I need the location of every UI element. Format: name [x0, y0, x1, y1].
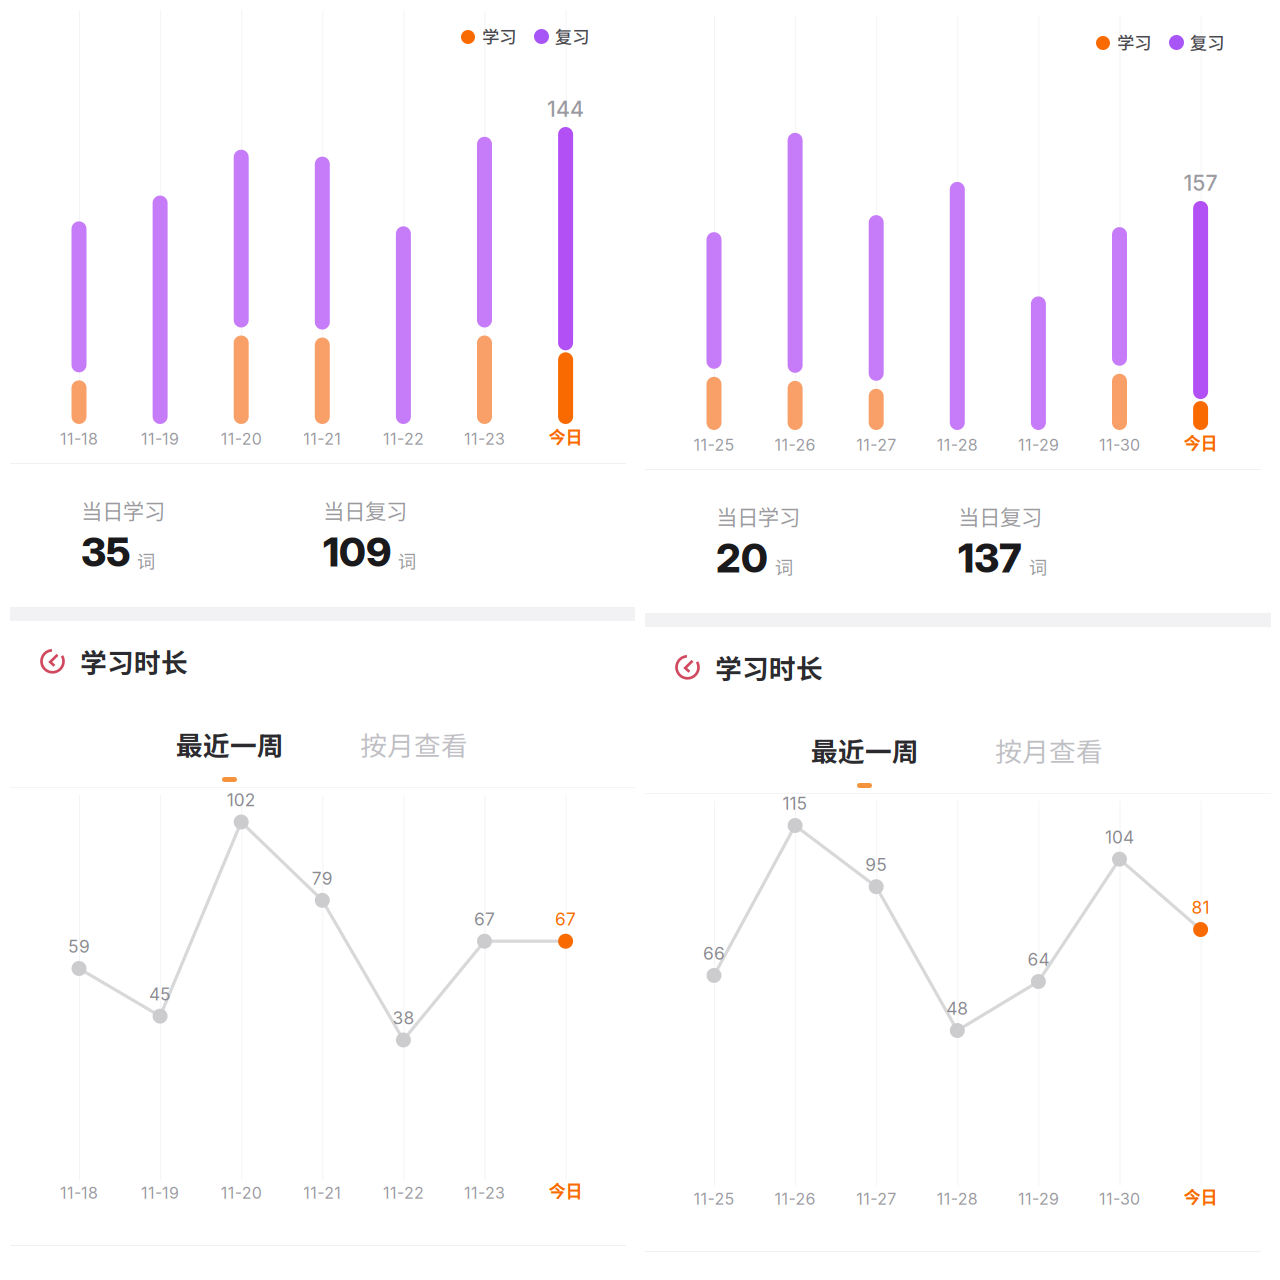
staticText: 59 — [68, 936, 90, 957]
staticText: 今日 — [1184, 1183, 1218, 1209]
staticText: 66 — [703, 943, 725, 964]
staticText: 词 — [137, 547, 156, 574]
staticText: 11-18 — [60, 429, 98, 449]
staticText: 11-29 — [1018, 1189, 1059, 1209]
staticText: 今日 — [549, 1177, 583, 1203]
button[interactable]: 按月查看 — [344, 726, 484, 762]
staticText: 学习 — [1117, 29, 1151, 55]
staticText: 11-26 — [775, 435, 816, 455]
staticText: 35 — [81, 528, 130, 576]
staticText: 11-28 — [937, 435, 978, 455]
staticText: 11-20 — [221, 429, 262, 449]
staticText: 81 — [1192, 897, 1210, 918]
staticText: 复习 — [555, 23, 589, 49]
staticText: 11-30 — [1099, 435, 1140, 455]
staticText: 11-20 — [221, 1183, 262, 1203]
staticText: 11-18 — [60, 1183, 98, 1203]
staticText: 学习 — [482, 23, 516, 49]
staticText: 45 — [149, 984, 171, 1005]
staticText: 最近一周 — [176, 725, 284, 763]
staticText: 109 — [323, 528, 391, 576]
staticText: 11-23 — [464, 429, 505, 449]
staticText: 词 — [1029, 553, 1048, 580]
staticText: 当日学习 — [716, 501, 800, 531]
staticText: 当日复习 — [323, 495, 407, 525]
staticText: 95 — [865, 854, 887, 875]
staticText: 11-25 — [693, 435, 734, 455]
staticText: 64 — [1027, 949, 1049, 970]
staticText: 115 — [783, 793, 808, 814]
staticText: 11-25 — [693, 1189, 734, 1209]
staticText: 11-21 — [303, 429, 341, 449]
staticText: 20 — [716, 534, 768, 582]
staticText: 当日复习 — [958, 501, 1042, 531]
staticText: 11-27 — [856, 435, 896, 455]
staticText: 11-27 — [856, 1189, 896, 1209]
staticText: 学习时长 — [715, 648, 823, 687]
staticText: 按月查看 — [995, 731, 1103, 769]
staticText: 137 — [958, 534, 1022, 582]
staticText: 11-30 — [1099, 1189, 1140, 1209]
staticText: 最近一周 — [811, 731, 919, 769]
staticText: 11-28 — [937, 1189, 978, 1209]
staticText: 11-23 — [464, 1183, 505, 1203]
staticText: 学习时长 — [80, 642, 188, 681]
staticText: 词 — [398, 547, 417, 574]
staticText: 按月查看 — [360, 725, 468, 763]
staticText: 今日 — [1184, 429, 1218, 455]
staticText: 11-19 — [141, 1183, 179, 1203]
staticText: 11-26 — [775, 1189, 816, 1209]
staticText: 48 — [946, 998, 968, 1019]
button[interactable]: 按月查看 — [979, 732, 1119, 768]
button[interactable]: 最近一周 — [795, 732, 935, 792]
staticText: 11-21 — [303, 1183, 341, 1203]
staticText: 67 — [555, 909, 576, 930]
staticText: 144 — [547, 96, 584, 122]
staticText: 词 — [775, 553, 794, 580]
staticText: 11-22 — [383, 1183, 424, 1203]
staticText: 11-19 — [141, 429, 179, 449]
staticText: 复习 — [1190, 29, 1224, 55]
staticText: 11-29 — [1018, 435, 1059, 455]
staticText: 79 — [312, 868, 333, 889]
staticText: 38 — [392, 1007, 414, 1028]
staticText: 104 — [1105, 827, 1134, 848]
staticText: 67 — [474, 909, 495, 930]
staticText: 157 — [1184, 170, 1218, 196]
staticText: 102 — [227, 789, 256, 810]
staticText: 11-22 — [383, 429, 424, 449]
staticText: 今日 — [549, 423, 583, 449]
staticText: 当日学习 — [81, 495, 165, 525]
button[interactable]: 最近一周 — [160, 726, 300, 786]
